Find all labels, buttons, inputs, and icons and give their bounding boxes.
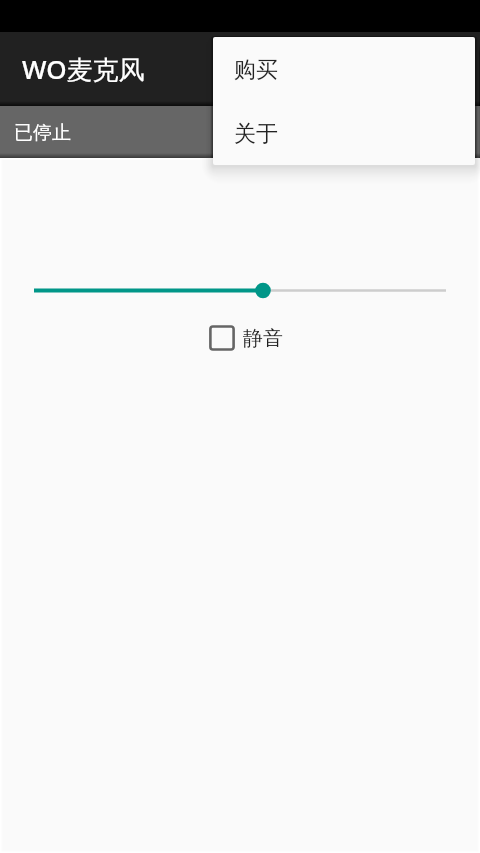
staticText: 已停止	[14, 121, 71, 145]
button[interactable]: Volume slider	[24, 270, 456, 312]
staticText: 静音	[243, 326, 283, 351]
button[interactable]: 关于	[213, 101, 475, 165]
staticText: 关于	[234, 120, 278, 148]
staticText: 购买	[234, 56, 278, 84]
button[interactable]: 购买	[213, 37, 475, 101]
button[interactable]: More options	[416, 37, 480, 101]
staticText: WO麦克风	[22, 51, 145, 87]
button[interactable]: 静音	[207, 320, 284, 354]
